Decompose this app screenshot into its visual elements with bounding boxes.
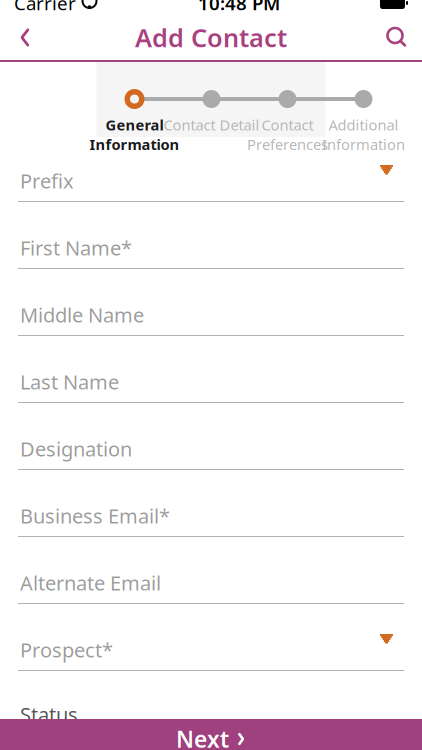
staticText: Designation xyxy=(20,435,132,462)
staticText: Information xyxy=(322,134,405,154)
staticText: General xyxy=(105,115,163,134)
button[interactable]: Last Name xyxy=(0,366,422,433)
button[interactable]: Back xyxy=(2,15,48,60)
staticText: Contact xyxy=(261,115,313,134)
staticText: Carrier xyxy=(14,0,76,15)
staticText: Next xyxy=(176,724,229,750)
button[interactable]: Designation xyxy=(0,433,422,500)
button[interactable]: Business Email* xyxy=(0,500,422,567)
staticText: Information xyxy=(89,134,179,154)
staticText: Alternate Email xyxy=(20,569,161,596)
button[interactable]: Next xyxy=(0,719,422,750)
button[interactable]: Prefix xyxy=(0,165,422,232)
staticText: Status xyxy=(20,701,78,728)
staticText: Last Name xyxy=(20,368,119,395)
staticText: Add Contact xyxy=(135,21,287,54)
button[interactable]: Prospect* xyxy=(0,634,422,701)
staticText: Prefix xyxy=(20,167,74,194)
button[interactable]: Search xyxy=(374,15,420,60)
button[interactable]: First Name* xyxy=(0,232,422,299)
staticText: Business Email* xyxy=(20,502,170,529)
button[interactable]: Alternate Email xyxy=(0,567,422,634)
staticText: First Name* xyxy=(20,234,132,261)
staticText: Prospect* xyxy=(20,636,113,663)
button[interactable]: Middle Name xyxy=(0,299,422,366)
staticText: Additional xyxy=(328,115,398,134)
staticText: Contact Detail xyxy=(163,115,259,134)
staticText: Middle Name xyxy=(20,301,144,328)
staticText: 10:48 PM xyxy=(198,0,280,15)
staticText: Preferences xyxy=(247,134,328,154)
